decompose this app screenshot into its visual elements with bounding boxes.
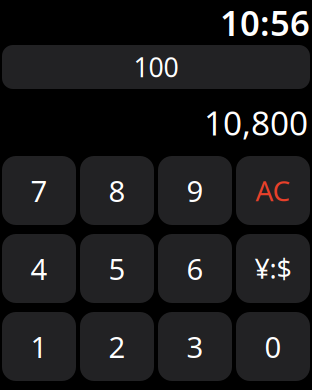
button[interactable]: 4 [2,234,76,303]
staticText: AC [255,172,290,209]
button[interactable]: 0 [236,312,310,381]
staticText: 6 [186,249,203,288]
button[interactable]: 5 [80,234,154,303]
staticText: 1 [30,327,47,366]
button[interactable]: 9 [158,156,232,225]
staticText: 7 [30,171,47,210]
staticText: 9 [186,171,203,210]
staticText: 10,800 [204,100,308,145]
staticText: 100 [133,49,178,85]
staticText: 8 [108,171,125,210]
button[interactable]: 2 [80,312,154,381]
staticText: 3 [186,327,203,366]
button[interactable]: 6 [158,234,232,303]
staticText: 4 [30,249,47,288]
staticText: 2 [108,327,125,366]
staticText: ¥:$ [254,251,291,286]
button[interactable]: 7 [2,156,76,225]
button[interactable]: 1 [2,312,76,381]
button[interactable]: Amount, 100 [2,45,310,89]
staticText: 10:56 [220,0,310,45]
button[interactable]: 8 [80,156,154,225]
staticText: 0 [264,327,281,366]
button[interactable]: ¥:$ [236,234,310,303]
button[interactable]: AC [236,156,310,225]
staticText: 5 [108,249,125,288]
button[interactable]: 3 [158,312,232,381]
